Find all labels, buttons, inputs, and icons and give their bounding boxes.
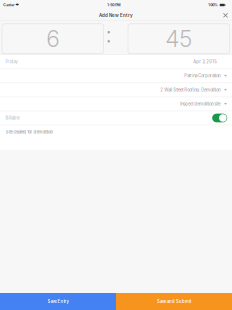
staticText: Site cleared for demolition <box>5 129 52 134</box>
staticText: Carrier <box>3 3 14 7</box>
staticText: 45 <box>165 25 192 52</box>
button[interactable]: 45 <box>128 24 229 54</box>
staticText: Patrina Corporation <box>184 73 220 78</box>
button[interactable]: Site cleared for demolition <box>0 125 232 139</box>
staticText: Save Entry <box>47 299 68 304</box>
staticText: 6 <box>46 25 59 52</box>
staticText: 100% <box>208 3 218 7</box>
staticText: Billable <box>5 115 19 120</box>
button[interactable]: Save and Submit <box>116 293 232 310</box>
button[interactable]: Billable <box>212 114 227 122</box>
staticText: 1:50 PM <box>107 3 120 7</box>
staticText: 2 Wall Street Roofing: Demolition <box>160 87 220 92</box>
button[interactable]: Patrina Corporation <box>0 69 232 83</box>
staticText: Inspect demolition site <box>180 101 220 106</box>
staticText: Save and Submit <box>157 299 191 304</box>
staticText: Friday <box>5 59 17 64</box>
staticText: Apr 3, 2015 <box>193 59 217 64</box>
staticText: Add New Entry <box>99 13 133 18</box>
button[interactable]: Friday <box>0 55 232 69</box>
button[interactable]: Close <box>219 10 232 21</box>
button[interactable]: Save Entry <box>0 293 116 310</box>
button[interactable]: 2 Wall Street Roofing: Demolition <box>0 83 232 97</box>
button[interactable]: Inspect demolition site <box>0 97 232 111</box>
button[interactable]: 6 <box>2 24 103 54</box>
